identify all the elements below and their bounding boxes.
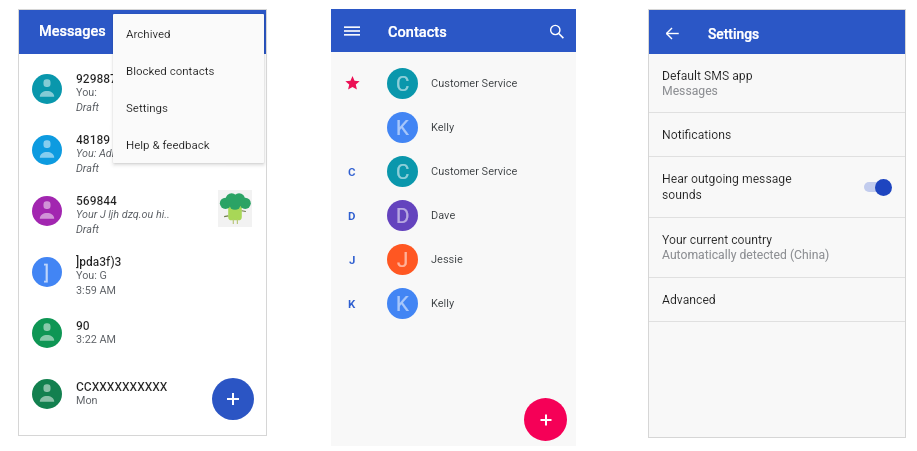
staticText: Jessie — [431, 253, 463, 266]
staticText: Settings — [708, 26, 760, 42]
staticText: Archived — [126, 27, 171, 40]
staticText: Settings — [126, 101, 168, 114]
staticText: Default SMS app — [662, 69, 753, 83]
staticText: C — [348, 165, 356, 178]
staticText: Advanced — [662, 293, 716, 307]
button[interactable]: Back — [659, 20, 685, 46]
staticText: Hear outgoing message sounds — [662, 172, 792, 202]
staticText: ] — [44, 261, 50, 283]
button[interactable]: C — [331, 61, 576, 105]
staticText: Draft — [76, 101, 99, 114]
button[interactable]: Search — [540, 15, 572, 47]
staticText: 48189 — [76, 133, 111, 147]
staticText: Blocked contacts — [126, 64, 215, 77]
button[interactable]: Hear outgoing message sounds — [648, 157, 906, 217]
button[interactable]: Settings — [113, 89, 264, 126]
staticText: 3:22 AM — [76, 333, 116, 346]
button[interactable]: Add contact — [524, 398, 567, 441]
staticText: J — [397, 248, 409, 272]
button[interactable]: K — [331, 281, 576, 325]
button[interactable]: C — [331, 149, 576, 193]
staticText: Customer Service — [431, 165, 518, 178]
staticText: You: Adi — [76, 147, 115, 160]
button[interactable]: Blocked contacts — [113, 52, 264, 89]
button[interactable]: D — [331, 193, 576, 237]
staticText: Mon — [76, 394, 98, 407]
button[interactable]: J — [331, 237, 576, 281]
staticText: CCXXXXXXXXXX — [76, 380, 168, 394]
button[interactable]: K — [331, 105, 576, 149]
button[interactable]: Notifications — [648, 113, 906, 156]
staticText: Draft — [76, 162, 99, 175]
staticText: C — [396, 160, 410, 184]
button[interactable]: Advanced — [648, 278, 906, 321]
staticText: C — [396, 72, 410, 96]
staticText: Kelly — [431, 121, 455, 134]
staticText: K — [396, 116, 409, 140]
button[interactable]: Default SMS app — [648, 54, 906, 112]
staticText: ]pda3f)3 — [76, 255, 122, 269]
staticText: Contacts — [388, 23, 447, 40]
staticText: J — [349, 253, 356, 266]
staticText: Kelly — [431, 297, 455, 310]
button[interactable]: ] — [18, 241, 267, 302]
staticText: Dave — [431, 209, 456, 222]
button[interactable]: Help & feedback — [113, 126, 264, 163]
staticText: You: — [76, 86, 97, 99]
staticText: K — [348, 297, 356, 310]
button[interactable]: CCXXXXXXXXXX — [18, 363, 267, 424]
button[interactable]: 90 — [18, 302, 267, 363]
button[interactable]: 48189 — [18, 119, 267, 180]
staticText: Your current country — [662, 233, 772, 247]
staticText: Messages — [662, 84, 718, 98]
button[interactable]: Archived — [113, 15, 264, 52]
staticText: D — [396, 204, 410, 228]
staticText: Notifications — [662, 128, 732, 142]
staticText: 3:59 AM — [76, 284, 116, 297]
staticText: 90 — [76, 319, 90, 333]
staticText: 929887 — [76, 72, 117, 86]
staticText: Customer Service — [431, 77, 518, 90]
button[interactable]: 569844 — [18, 180, 267, 241]
staticText: Automatically detected (China) — [662, 248, 830, 262]
button[interactable]: Your current country — [648, 218, 906, 277]
staticText: 569844 — [76, 194, 117, 208]
staticText: You: G — [76, 269, 107, 282]
staticText: D — [348, 209, 356, 222]
staticText: Messages — [39, 23, 106, 40]
staticText: Your J ljh dzq.ou hi.. — [76, 208, 170, 221]
button[interactable]: Open navigation menu — [336, 15, 368, 47]
button[interactable]: 929887 — [18, 58, 267, 119]
staticText: Help & feedback — [126, 138, 210, 151]
staticText: K — [396, 292, 409, 316]
staticText: Draft — [76, 223, 99, 236]
button[interactable]: New conversation — [212, 378, 254, 420]
